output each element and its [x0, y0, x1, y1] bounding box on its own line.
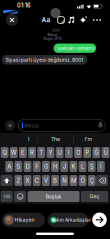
staticText: Siyasi parti üyeliğim s	[57, 46, 94, 51]
staticText: 123	[4, 194, 10, 199]
staticText: I	[68, 149, 70, 156]
staticText: D	[25, 163, 29, 170]
staticText: Mesaj	[47, 33, 57, 37]
staticText: 8001	[52, 28, 59, 33]
staticText: X	[26, 177, 30, 184]
staticText: Ş	[90, 163, 94, 170]
staticText: C	[35, 177, 39, 184]
staticText: Boşluk	[46, 193, 62, 200]
staticText: K	[71, 163, 75, 170]
staticText: U	[58, 149, 62, 156]
staticText: The	[51, 136, 60, 142]
staticText: Siyasi parti üyesi değilsiniz. 8001	[5, 57, 83, 63]
staticText: Q	[3, 149, 7, 156]
staticText: R	[30, 149, 34, 156]
staticText: Aa	[41, 16, 50, 24]
staticText: Hikayen	[14, 217, 34, 223]
staticText: L	[81, 163, 84, 170]
staticText: Ç	[90, 177, 94, 184]
staticText: Geç	[89, 193, 99, 199]
staticText: Mesaj	[24, 123, 38, 129]
staticText: I'm	[84, 136, 92, 142]
staticText: Ü	[103, 149, 107, 156]
staticText: S	[16, 163, 20, 170]
staticText: B	[53, 177, 57, 184]
staticText: Ğ	[94, 149, 98, 156]
staticText: J	[63, 163, 66, 170]
staticText: W	[11, 149, 17, 156]
staticText: P	[85, 149, 89, 156]
staticText: G	[44, 163, 48, 170]
staticText: İ	[100, 163, 102, 170]
staticText: 01:16	[17, 2, 31, 9]
staticText: E	[21, 149, 25, 156]
staticText: A	[7, 163, 11, 170]
staticText: N	[62, 177, 66, 184]
staticText: O	[76, 149, 80, 156]
staticText: H	[53, 163, 57, 170]
staticText: F	[35, 163, 38, 170]
staticText: Bugün 01:13	[43, 37, 61, 41]
staticText: Yakın Arkadaşlar	[51, 217, 91, 223]
staticText: T	[39, 149, 43, 156]
staticText: Z	[16, 177, 20, 184]
staticText: I	[28, 136, 29, 142]
staticText: Y	[48, 149, 52, 156]
staticText: M	[71, 177, 76, 184]
staticText: V	[44, 177, 48, 184]
staticText: Ö	[81, 177, 85, 184]
